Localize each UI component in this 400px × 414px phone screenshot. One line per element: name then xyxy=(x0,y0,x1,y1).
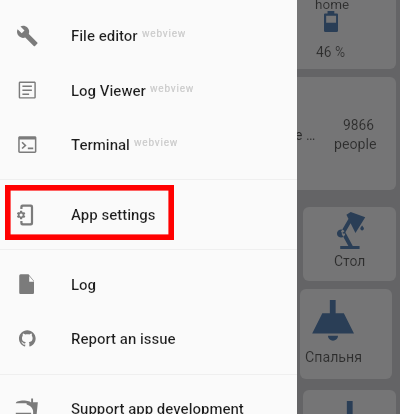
button[interactable]: Support app development xyxy=(0,382,297,414)
staticText: Support app development xyxy=(71,400,244,414)
staticText: webview xyxy=(150,83,195,95)
staticText: 46 % xyxy=(316,44,346,60)
button[interactable]: Device card xyxy=(266,0,396,69)
staticText: File editor xyxy=(71,27,138,45)
button[interactable]: App settings xyxy=(0,188,297,242)
staticText: 9866 xyxy=(343,117,375,133)
button[interactable]: Device card xyxy=(303,390,396,414)
staticText: Terminal xyxy=(71,136,130,154)
staticText: App settings xyxy=(71,206,156,224)
staticText: Стол xyxy=(334,253,366,269)
staticText: home xyxy=(315,0,350,12)
staticText: Log Viewer xyxy=(71,82,146,100)
staticText: Log xyxy=(71,276,97,294)
button[interactable]: Report an issue xyxy=(0,312,297,366)
button[interactable]: Log xyxy=(0,258,297,312)
button[interactable]: Device card xyxy=(300,289,392,379)
button[interactable]: Terminal xyxy=(0,118,297,172)
staticText: Спальня xyxy=(305,349,363,366)
staticText: webview xyxy=(134,137,179,149)
button[interactable]: File editor xyxy=(0,9,297,63)
button[interactable]: Log Viewer xyxy=(0,64,297,118)
staticText: Report an issue xyxy=(71,330,176,348)
button[interactable]: Device card xyxy=(250,77,396,190)
button[interactable]: Device card xyxy=(303,207,396,281)
staticText: people xyxy=(334,136,377,153)
staticText: e … xyxy=(295,127,316,143)
staticText: webview xyxy=(142,28,187,40)
